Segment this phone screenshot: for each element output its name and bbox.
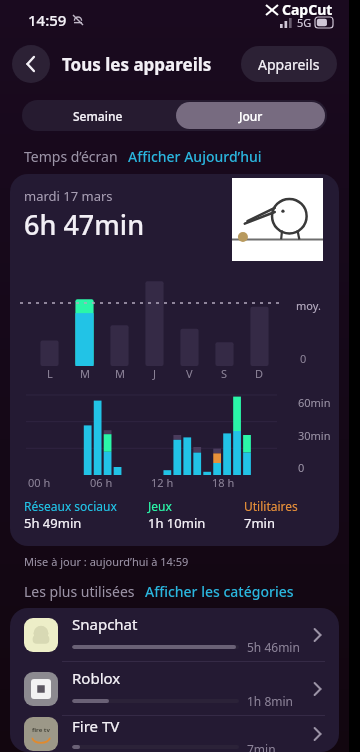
staticText: 00 h [28, 475, 51, 490]
staticText: Jour [239, 108, 263, 124]
staticText: Afficher les catégories [145, 582, 294, 601]
staticText: 1h 10min [148, 514, 206, 532]
staticText: D [255, 366, 264, 381]
staticText: Roblox [72, 668, 121, 688]
button[interactable]: Roblox [10, 662, 339, 715]
staticText: J [153, 366, 157, 381]
staticText: Semaine [73, 108, 123, 124]
button[interactable]: Appareils [241, 46, 337, 82]
staticText: 1h 8min [247, 693, 309, 709]
staticText: fire tv [32, 726, 50, 734]
staticText: Appareils [258, 55, 320, 74]
button[interactable]: Jour [176, 102, 325, 129]
staticText: 60min [298, 395, 331, 410]
staticText: moy. [296, 298, 321, 313]
staticText: Les plus utilisées [24, 582, 135, 601]
staticText: S [221, 366, 228, 381]
staticText: 5G [297, 15, 312, 30]
button[interactable]: Retour [12, 45, 50, 83]
staticText: Réseaux sociaux [24, 498, 117, 514]
staticText: mardi 17 mars [24, 187, 113, 205]
staticText: Tous les appareils [62, 53, 212, 76]
staticText: 06 h [90, 475, 113, 490]
staticText: 0 [300, 351, 307, 366]
button[interactable]: fire tv [10, 716, 339, 752]
staticText: 18 h [212, 475, 235, 490]
staticText: 5h 46min [247, 639, 309, 655]
button[interactable]: Snapchat [10, 608, 339, 661]
staticText: M [80, 366, 90, 381]
button[interactable]: Afficher Aujourd’hui [128, 147, 262, 166]
staticText: 30min [298, 428, 331, 443]
staticText: 5h 49min [24, 514, 82, 532]
staticText: Temps d’écran [24, 147, 118, 166]
staticText: 6h 47min [24, 206, 145, 243]
staticText: CapCut [282, 0, 333, 19]
staticText: Utilitaires [244, 498, 298, 514]
staticText: Fire TV [72, 716, 120, 736]
staticText: 14:59 [28, 10, 67, 30]
staticText: 7min [247, 741, 309, 752]
staticText: Afficher Aujourd’hui [128, 147, 262, 166]
button[interactable]: mardi 17 mars [10, 174, 339, 546]
staticText: 7min [244, 514, 275, 532]
staticText: Snapchat [72, 614, 138, 634]
staticText: L [47, 366, 53, 381]
staticText: 12 h [151, 475, 174, 490]
staticText: Mise à jour : aujourd’hui à 14:59 [24, 554, 189, 569]
staticText: M [115, 366, 125, 381]
staticText: V [186, 366, 193, 381]
button[interactable]: Afficher les catégories [145, 582, 294, 601]
button[interactable]: Semaine [22, 100, 174, 131]
staticText: Jeux [148, 498, 172, 514]
staticText: 0 [298, 460, 305, 475]
